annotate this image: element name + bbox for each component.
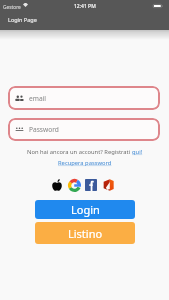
button[interactable]: Sign in with Apple [50, 178, 63, 191]
button[interactable]: Sign in with Google [68, 178, 81, 191]
button[interactable]: Recupera password [58, 159, 112, 167]
staticText: Login [71, 202, 100, 217]
staticText: Gestore [3, 4, 21, 11]
button[interactable]: email [8, 86, 160, 110]
button[interactable]: Sign in with Facebook [84, 178, 97, 191]
button[interactable]: Password [8, 118, 160, 141]
staticText: Listino [68, 226, 103, 241]
button[interactable]: qui! [132, 148, 143, 156]
staticText: Recupera password [58, 159, 112, 167]
staticText: email [29, 94, 46, 103]
button[interactable]: Sign in with Microsoft [102, 178, 115, 191]
button[interactable]: Listino [35, 222, 135, 244]
staticText: Non hai ancora un account? Registrati [27, 148, 132, 156]
staticText: Login Page [8, 16, 37, 23]
staticText: 12:41 PM [74, 3, 96, 10]
staticText: Password [29, 125, 59, 134]
button[interactable]: Login [35, 200, 135, 219]
staticText: qui! [132, 148, 143, 156]
